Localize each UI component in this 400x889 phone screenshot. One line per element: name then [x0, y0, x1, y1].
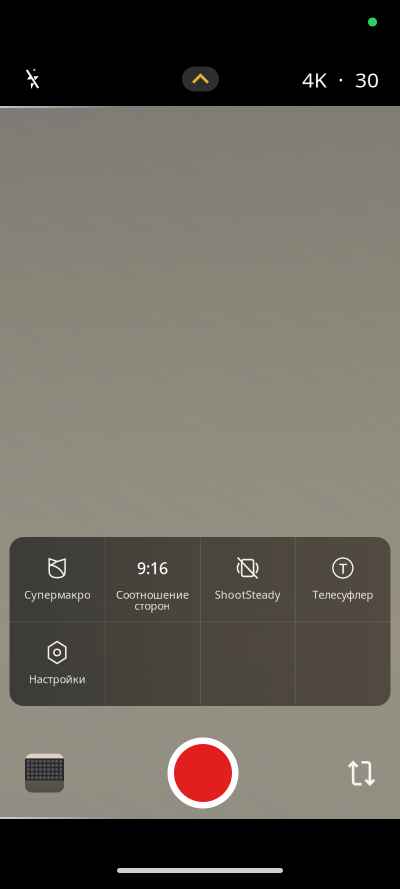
- button[interactable]: 9:16: [105, 537, 200, 621]
- staticText: Супермакро: [24, 587, 90, 602]
- staticText: 30: [355, 65, 379, 93]
- button[interactable]: Show more controls: [182, 66, 219, 91]
- button[interactable]: Record: [167, 737, 238, 808]
- staticText: 4K: [302, 65, 327, 93]
- button[interactable]: T: [295, 537, 390, 621]
- button[interactable]: 4K: [302, 57, 379, 101]
- button[interactable]: Gallery: [21, 749, 68, 796]
- button[interactable]: Switch camera: [338, 749, 385, 796]
- staticText: 9:16: [137, 557, 168, 579]
- button[interactable]: ShootSteady: [200, 537, 295, 621]
- staticText: T: [339, 558, 347, 578]
- staticText: Настройки: [29, 672, 86, 686]
- staticText: сторон: [134, 598, 170, 613]
- button[interactable]: Flash off: [9, 56, 55, 102]
- button[interactable]: Супермакро: [9, 537, 105, 621]
- button[interactable]: Настройки: [9, 621, 105, 706]
- staticText: Телесуфлер: [312, 587, 373, 602]
- staticText: ·: [338, 65, 344, 93]
- staticText: ShootSteady: [215, 587, 281, 602]
- staticText: Соотношение: [116, 587, 189, 602]
